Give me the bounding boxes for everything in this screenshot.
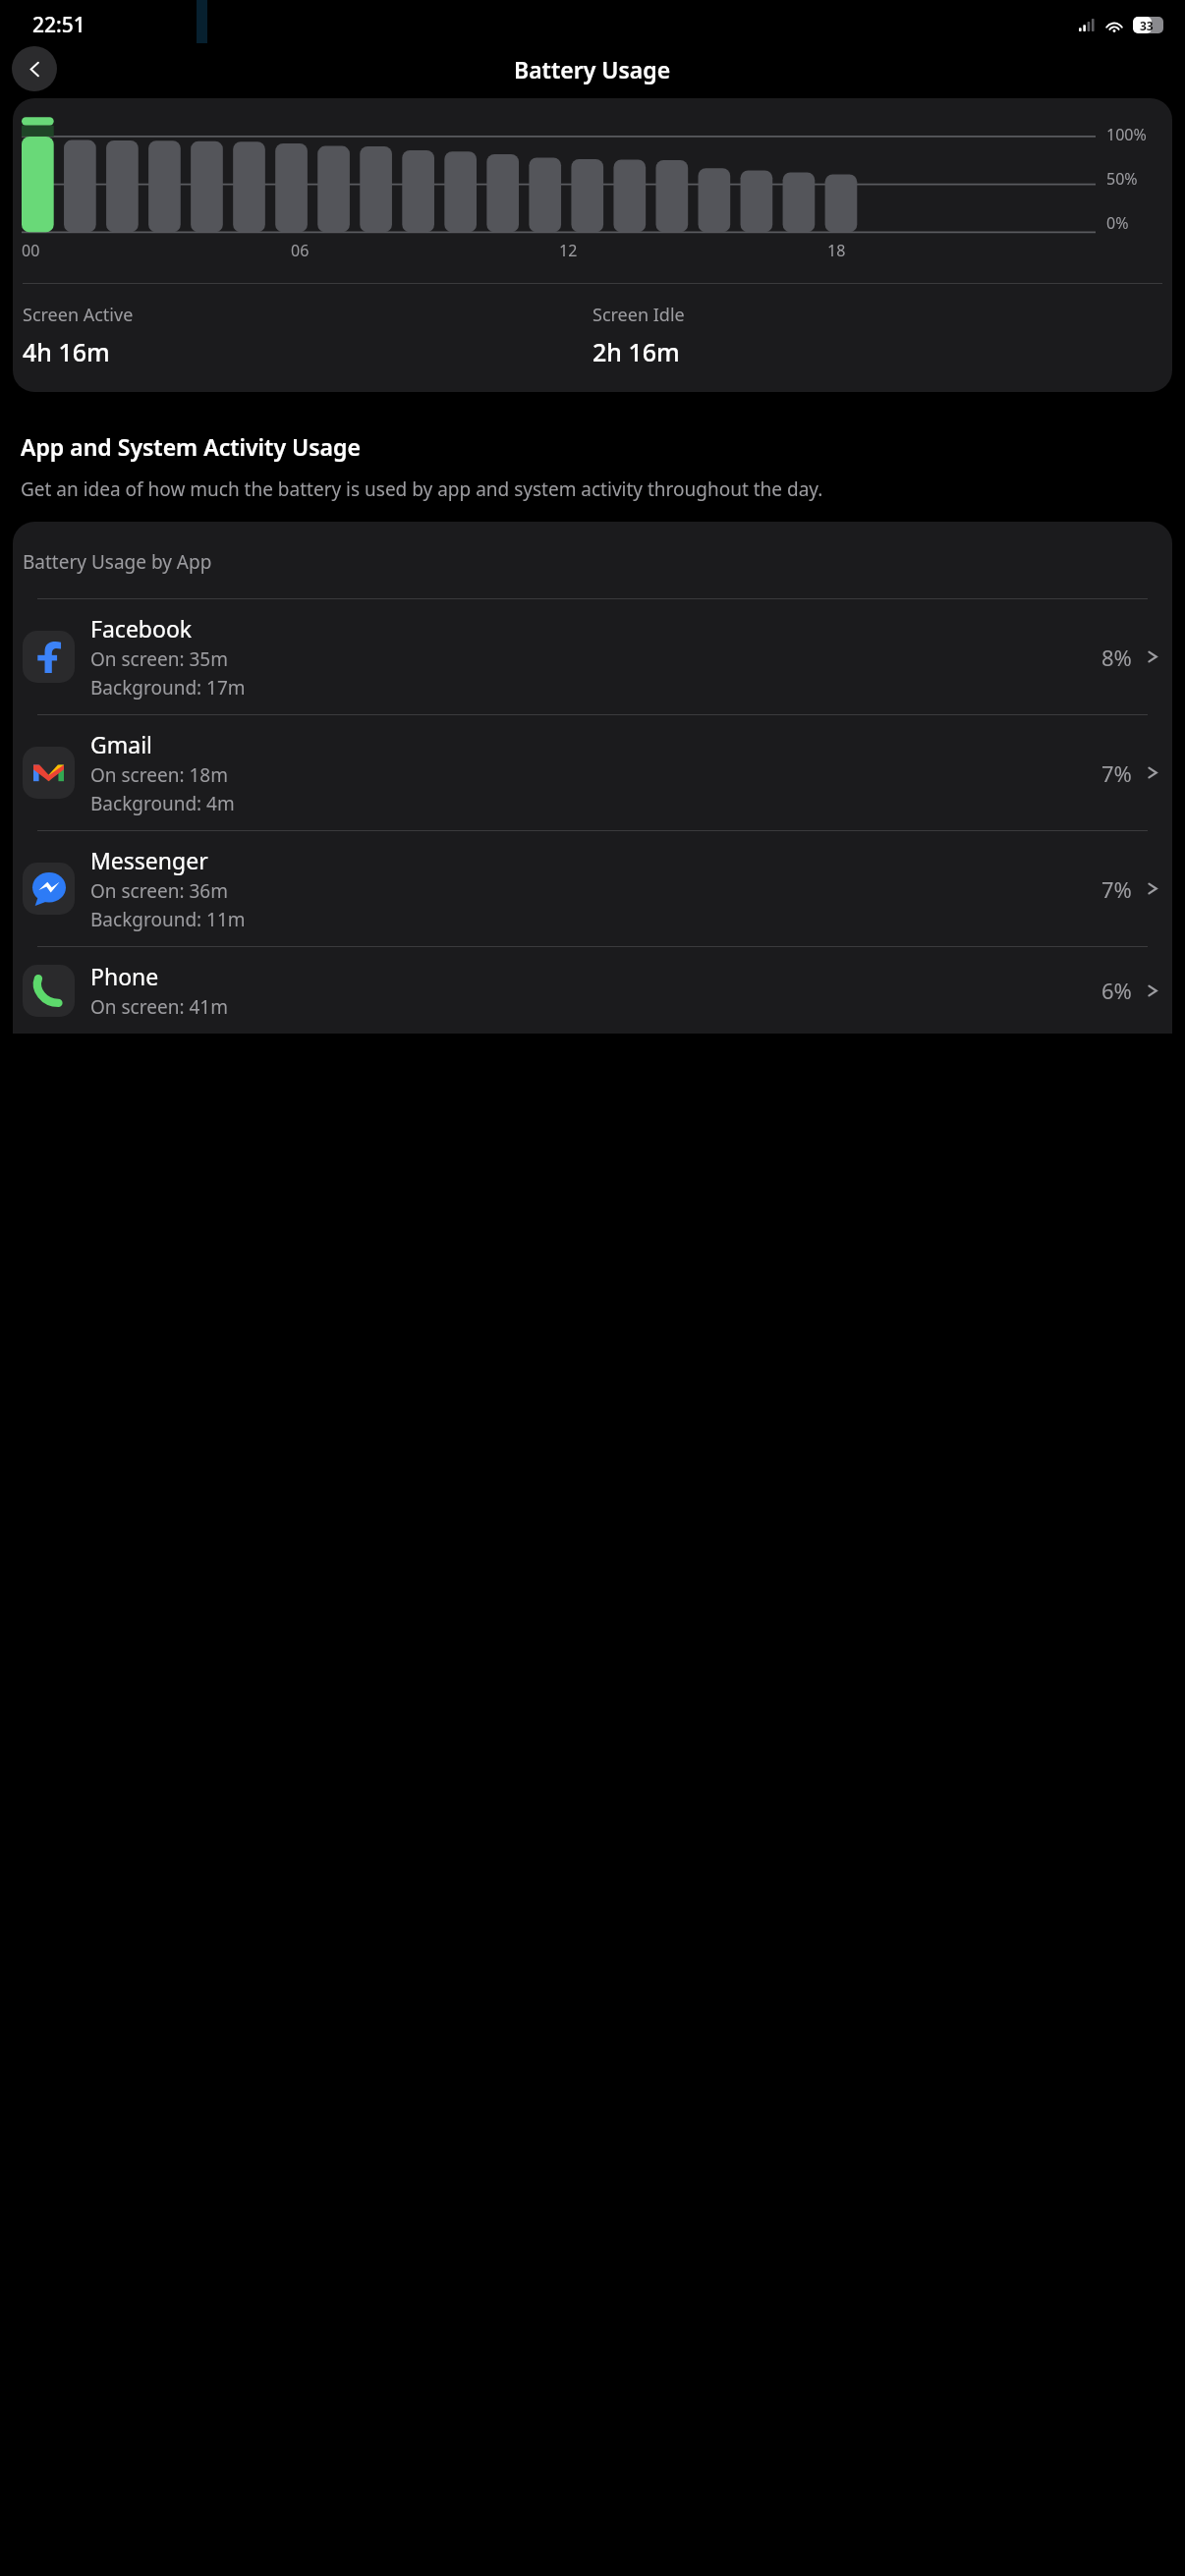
staticText: Screen Idle [592,303,685,327]
staticText: 12 [559,240,578,261]
button[interactable]: Gmail [13,715,1172,830]
button[interactable]: Messenger [13,831,1172,946]
staticText: 8% [1101,643,1132,672]
staticText: 18 [827,240,846,261]
staticText: Phone [90,961,159,991]
staticText: On screen: 18m [90,762,228,788]
staticText: Background: 4m [90,791,235,816]
staticText: 7% [1101,874,1132,904]
staticText: 2h 16m [592,335,680,368]
staticText: 22:51 [32,11,85,39]
staticText: Battery Usage by App [23,549,212,575]
staticText: App and System Activity Usage [21,431,361,462]
staticText: Background: 11m [90,907,246,932]
staticText: Screen Active [23,303,134,327]
staticText: 6% [1101,976,1132,1005]
staticText: 06 [291,240,310,261]
staticText: Background: 17m [90,675,246,700]
staticText: Battery Usage [514,54,671,84]
staticText: 4h 16m [23,335,110,368]
staticText: Facebook [90,613,193,644]
staticText: 33 [1140,18,1154,33]
staticText: Get an idea of how much the battery is u… [21,476,823,502]
staticText: 0% [1106,212,1129,234]
staticText: 7% [1101,758,1132,788]
staticText: Gmail [90,729,153,759]
staticText: 50% [1106,168,1138,190]
staticText: On screen: 36m [90,878,228,904]
staticText: On screen: 41m [90,994,228,1020]
staticText: Messenger [90,845,208,875]
button[interactable]: Phone [13,947,1172,1034]
button[interactable]: Facebook [13,599,1172,714]
button[interactable]: Back [12,46,57,91]
staticText: On screen: 35m [90,646,228,672]
staticText: 00 [22,240,40,261]
staticText: 100% [1106,124,1147,145]
